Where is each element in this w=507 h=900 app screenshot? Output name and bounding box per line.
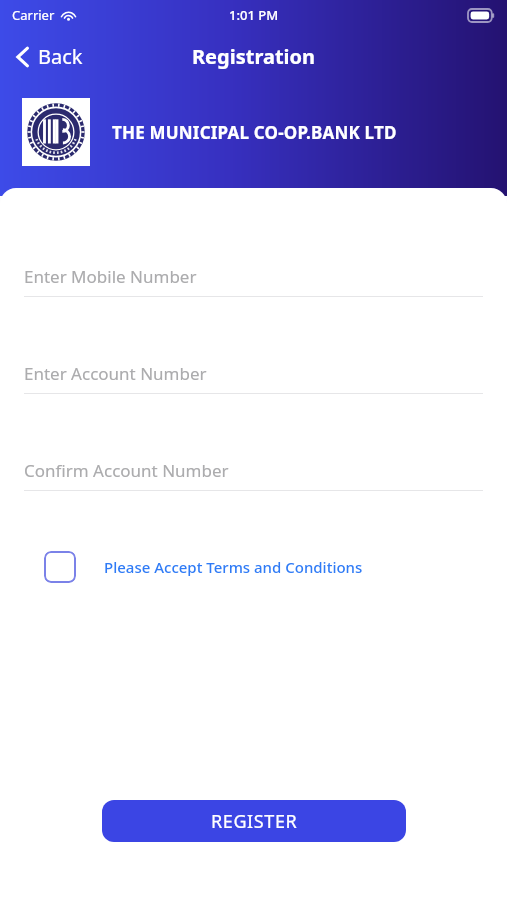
- staticText: REGISTER: [211, 809, 298, 834]
- button[interactable]: Confirm Account Number: [24, 459, 483, 491]
- other: Accept terms checkbox: [44, 551, 76, 583]
- button[interactable]: Enter Mobile Number: [24, 265, 483, 297]
- staticText: Please Accept Terms and Conditions: [104, 557, 363, 577]
- staticText: Registration: [192, 43, 316, 70]
- button[interactable]: REGISTER: [102, 800, 406, 842]
- staticText: Back: [38, 43, 83, 70]
- staticText: Enter Mobile Number: [24, 265, 197, 288]
- staticText: Confirm Account Number: [24, 459, 229, 482]
- staticText: THE MUNICIPAL CO-OP.BANK LTD: [112, 121, 397, 144]
- staticText: Carrier: [12, 6, 55, 24]
- button[interactable]: Accept terms checkbox: [44, 551, 483, 583]
- staticText: 1:01 PM: [229, 6, 279, 24]
- staticText: Enter Account Number: [24, 362, 207, 385]
- button[interactable]: Back: [12, 39, 87, 74]
- other: Municipal Co-op Bank logo: [22, 98, 90, 166]
- button[interactable]: Enter Account Number: [24, 362, 483, 394]
